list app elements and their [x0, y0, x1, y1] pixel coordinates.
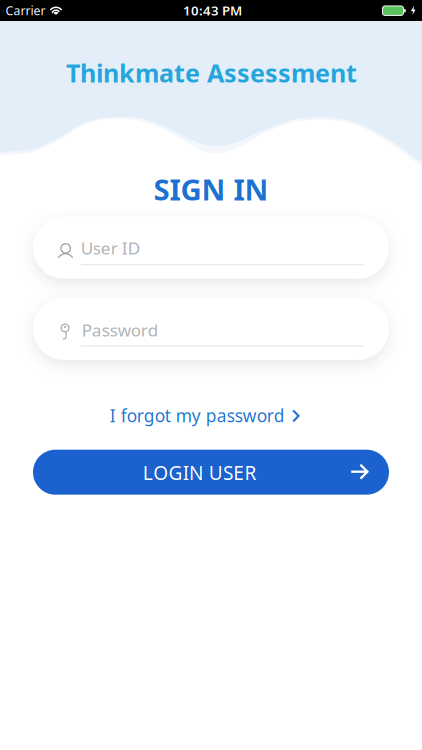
staticText: User ID: [81, 236, 140, 260]
staticText: 10:43 PM: [183, 1, 242, 19]
staticText: I forgot my password: [110, 404, 285, 427]
button[interactable]: User ID: [33, 217, 389, 279]
button[interactable]: LOGIN USER: [33, 450, 389, 495]
staticText: LOGIN USER: [143, 460, 257, 486]
button[interactable]: I forgot my password: [104, 401, 314, 429]
button[interactable]: Password: [33, 298, 389, 360]
staticText: Thinkmate Assessment: [66, 56, 357, 90]
staticText: Carrier: [5, 2, 45, 19]
staticText: SIGN IN: [153, 169, 268, 209]
staticText: Password: [82, 318, 158, 341]
